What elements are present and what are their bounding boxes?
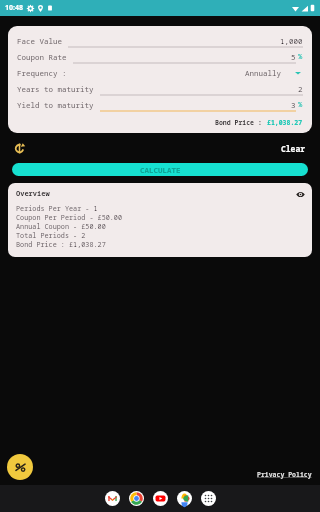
staticText: Total Periods - 2 <box>16 231 86 240</box>
staticText: £1,038.27 <box>267 118 303 127</box>
staticText: Years to maturity <box>17 84 94 94</box>
staticText: Coupon Rate <box>17 52 67 62</box>
staticText: Bond Price : £1,038.27 <box>16 240 106 249</box>
button[interactable]: CALCULATE <box>12 163 308 176</box>
button[interactable]: Years to maturity <box>17 81 303 97</box>
button[interactable]: All apps <box>201 491 216 506</box>
staticText: CALCULATE <box>140 165 181 175</box>
staticText: Annual Coupon - £50.00 <box>16 222 106 231</box>
button[interactable]: Gmail <box>105 491 120 506</box>
button[interactable]: Toggle overview visibility <box>295 189 305 199</box>
staticText: Periods Per Year - 1 <box>16 204 98 213</box>
staticText: % <box>298 52 303 62</box>
staticText: Frequency : <box>17 68 67 78</box>
staticText: % <box>298 100 303 110</box>
button[interactable]: Face Value <box>17 33 303 49</box>
button[interactable]: Coupon Rate <box>17 49 303 65</box>
staticText: Privacy Policy <box>257 470 312 479</box>
staticText: Yield to maturity <box>17 100 94 110</box>
staticText: 10:48 <box>5 3 23 13</box>
button[interactable]: Chrome <box>129 491 144 506</box>
staticText: 2 <box>298 84 303 94</box>
button[interactable]: Clear <box>278 141 308 156</box>
staticText: Bond Price : <box>215 118 262 127</box>
button[interactable]: Swap currency <box>12 141 26 155</box>
staticText: Annually <box>245 68 281 78</box>
staticText: Coupon Per Period - £50.00 <box>16 213 123 222</box>
button[interactable]: Frequency : <box>17 65 303 81</box>
button[interactable]: Google Photos <box>177 491 192 506</box>
button[interactable]: YouTube <box>153 491 168 506</box>
staticText: 3 <box>291 100 296 110</box>
button[interactable]: Yield to maturity <box>17 97 303 113</box>
staticText: Overview <box>16 189 50 199</box>
button[interactable]: Privacy Policy <box>255 468 314 481</box>
staticText: Face Value <box>17 36 62 46</box>
staticText: 5 <box>291 52 296 62</box>
staticText: Clear <box>281 143 305 154</box>
staticText: 1,000 <box>280 36 303 46</box>
button[interactable]: Calculator tools <box>7 454 33 480</box>
